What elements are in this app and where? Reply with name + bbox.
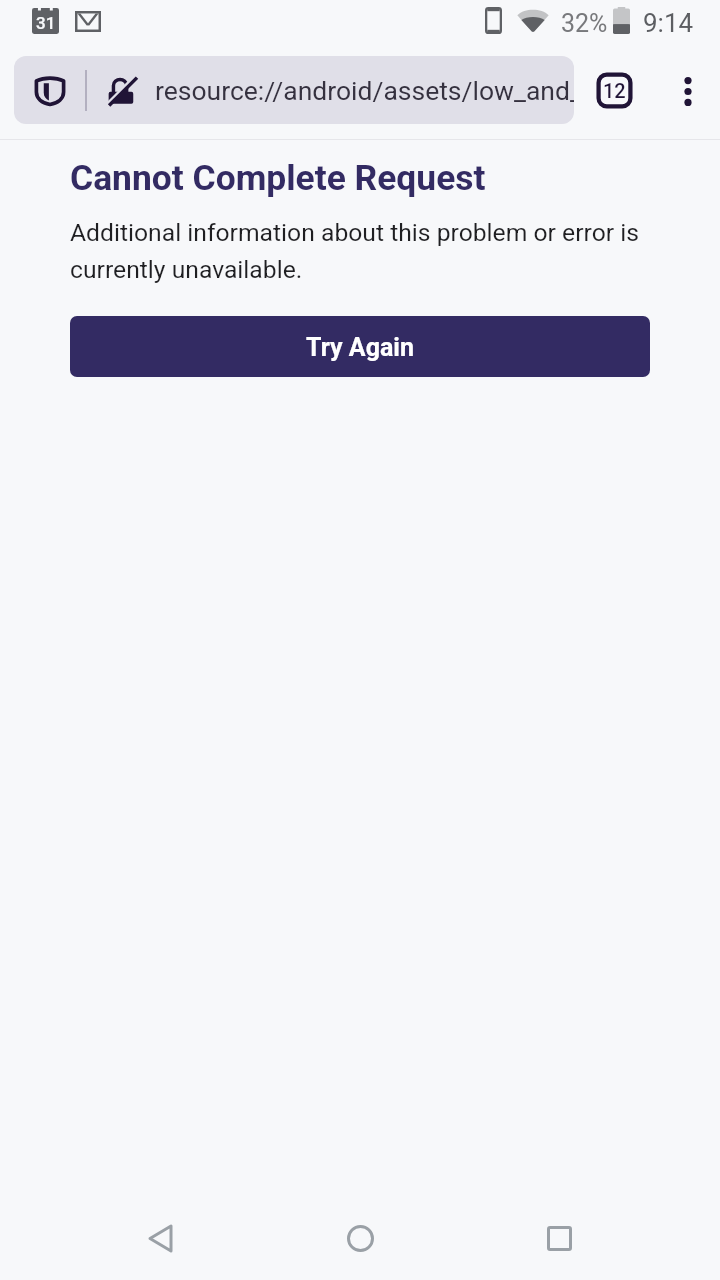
staticText: 31 (36, 13, 56, 33)
button[interactable]: Recent apps (519, 1198, 599, 1278)
staticText: 9:14 (643, 8, 694, 38)
other: Privacy protection (34, 76, 66, 108)
button[interactable]: Try Again (70, 316, 650, 377)
button[interactable]: Privacy protection (14, 56, 574, 124)
staticText: 12 (603, 79, 626, 102)
button[interactable]: Tabs (590, 66, 638, 114)
staticText: Try Again (306, 333, 414, 362)
staticText: resource://android/assets/low_and_ (155, 75, 574, 106)
staticText: Additional information about this proble… (70, 218, 650, 284)
other: Connection is not secure (107, 77, 137, 107)
staticText: Cannot Complete Request (70, 157, 486, 198)
button[interactable]: More options (664, 67, 712, 115)
staticText: 32% (561, 9, 608, 38)
button[interactable]: Home (320, 1198, 400, 1278)
button[interactable]: Back (120, 1198, 200, 1278)
